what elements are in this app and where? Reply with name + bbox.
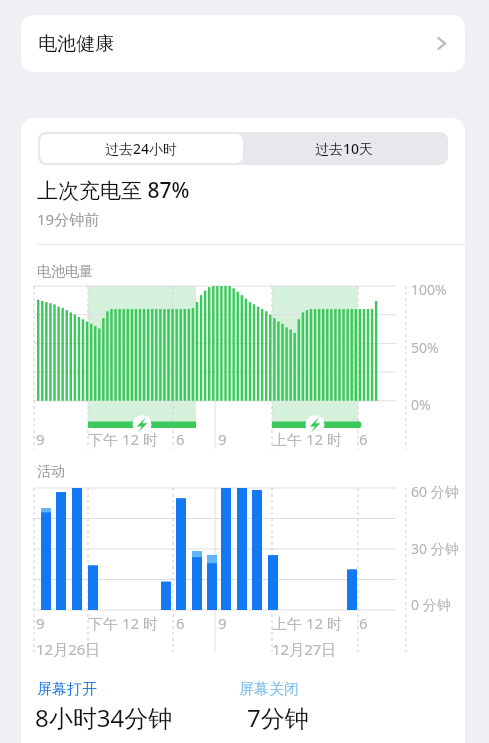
button[interactable]: 电池健康: [21, 15, 465, 72]
staticText: 电池健康: [38, 32, 114, 56]
staticText: 6: [359, 613, 368, 633]
staticText: 0%: [411, 395, 431, 414]
staticText: 7分钟: [247, 701, 309, 734]
staticText: 19分钟前: [37, 209, 100, 229]
staticText: 屏幕关闭: [239, 680, 299, 699]
staticText: 12月26日: [36, 639, 101, 659]
staticText: 6: [176, 429, 185, 449]
staticText: 0 分钟: [411, 595, 451, 614]
staticText: 100%: [411, 280, 447, 299]
staticText: 9: [36, 429, 45, 449]
staticText: 屏幕打开: [37, 680, 97, 699]
staticText: 上午 12 时: [272, 429, 342, 449]
staticText: 过去10天: [315, 139, 374, 158]
staticText: 9: [218, 429, 227, 449]
staticText: 电池电量: [37, 263, 93, 281]
button[interactable]: 过去24小时: [40, 134, 243, 163]
staticText: 30 分钟: [411, 539, 459, 558]
staticText: 下午 12 时: [88, 429, 158, 449]
other: 打开电池健康: [434, 36, 449, 51]
staticText: 9: [36, 613, 45, 633]
staticText: 活动: [37, 463, 65, 481]
staticText: 12月27日: [272, 639, 337, 659]
staticText: 过去24小时: [105, 139, 178, 158]
staticText: 上午 12 时: [272, 613, 342, 633]
button[interactable]: 过去10天: [243, 134, 446, 163]
staticText: 6: [359, 429, 368, 449]
staticText: 60 分钟: [411, 482, 459, 501]
staticText: 6: [176, 613, 185, 633]
button[interactable]: 屏幕关闭: [237, 676, 437, 736]
staticText: 上次充电至 87%: [37, 176, 190, 205]
staticText: 8小时34分钟: [35, 701, 173, 734]
button[interactable]: 屏幕打开: [35, 676, 235, 736]
staticText: 9: [218, 613, 227, 633]
staticText: 下午 12 时: [88, 613, 158, 633]
staticText: 50%: [411, 338, 439, 357]
